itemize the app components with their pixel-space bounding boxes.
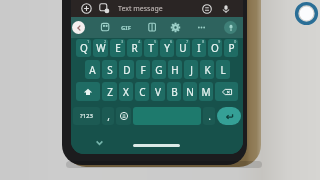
- button[interactable]: V: [151, 82, 165, 101]
- staticText: R: [131, 41, 138, 55]
- button[interactable]: M: [199, 82, 213, 101]
- staticText: ,: [107, 109, 110, 123]
- staticText: ?123: [80, 112, 93, 120]
- button[interactable]: Emoji: [202, 4, 212, 14]
- button[interactable]: I: [192, 39, 206, 57]
- button[interactable]: Q: [76, 39, 91, 57]
- staticText: S: [107, 63, 113, 77]
- staticText: C: [139, 85, 146, 99]
- staticText: A: [89, 63, 96, 77]
- button[interactable]: Y: [160, 39, 174, 57]
- button[interactable]: C: [135, 82, 149, 101]
- staticText: 2: [104, 39, 107, 44]
- staticText: K: [204, 63, 211, 77]
- button[interactable]: N: [183, 82, 197, 101]
- staticText: N: [186, 85, 194, 99]
- button[interactable]: GIF: [119, 21, 133, 35]
- staticText: E: [115, 41, 121, 55]
- button[interactable]: Shift: [76, 82, 100, 101]
- staticText: Text message: [118, 4, 163, 14]
- button[interactable]: Voice input: [224, 21, 237, 34]
- button[interactable]: D: [119, 60, 134, 79]
- staticText: Z: [107, 85, 113, 99]
- staticText: 6: [170, 39, 173, 44]
- button[interactable]: K: [200, 60, 214, 79]
- staticText: 5: [154, 39, 157, 44]
- staticText: L: [220, 63, 226, 77]
- button[interactable]: W: [93, 39, 108, 57]
- staticText: 4: [138, 39, 141, 44]
- staticText: .: [208, 109, 211, 123]
- staticText: Q: [80, 41, 88, 55]
- staticText: V: [155, 85, 161, 99]
- staticText: D: [123, 63, 131, 77]
- staticText: GIF: [121, 24, 131, 32]
- staticText: G: [155, 63, 163, 77]
- button[interactable]: X: [119, 82, 133, 101]
- staticText: O: [211, 41, 219, 55]
- staticText: Y: [164, 41, 170, 55]
- staticText: 8: [202, 39, 205, 44]
- button[interactable]: Back: [72, 21, 85, 34]
- button[interactable]: T: [144, 39, 158, 57]
- staticText: W: [96, 41, 106, 55]
- button[interactable]: O: [208, 39, 222, 57]
- staticText: 9: [218, 39, 221, 44]
- button[interactable]: Enter: [217, 107, 241, 125]
- staticText: 1: [87, 39, 90, 44]
- button[interactable]: ?123: [73, 107, 100, 125]
- staticText: F: [140, 63, 146, 77]
- button[interactable]: ,: [102, 107, 114, 125]
- button[interactable]: H: [168, 60, 182, 79]
- staticText: X: [123, 85, 129, 99]
- button[interactable]: S: [102, 60, 117, 79]
- staticText: M: [201, 85, 211, 99]
- button[interactable]: Settings: [169, 21, 182, 34]
- staticText: 3: [121, 39, 124, 44]
- staticText: 0: [234, 39, 237, 44]
- button[interactable]: Gallery: [99, 3, 110, 14]
- button[interactable]: G: [152, 60, 166, 79]
- staticText: J: [190, 63, 193, 77]
- button[interactable]: Stickers: [99, 21, 112, 34]
- button[interactable]: L: [216, 60, 230, 79]
- button[interactable]: Voice message: [221, 4, 231, 14]
- staticText: 7: [186, 39, 189, 44]
- button[interactable]: Add attachment: [81, 3, 92, 14]
- button[interactable]: P: [224, 39, 238, 57]
- button[interactable]: Hide keyboard: [94, 137, 105, 148]
- staticText: U: [179, 41, 187, 55]
- button[interactable]: A: [85, 60, 100, 79]
- button[interactable]: F: [136, 60, 150, 79]
- staticText: T: [148, 41, 154, 55]
- staticText: I: [197, 41, 201, 55]
- button[interactable]: Z: [102, 82, 117, 101]
- staticText: H: [171, 63, 179, 77]
- staticText: P: [228, 41, 235, 55]
- button[interactable]: E: [110, 39, 125, 57]
- button[interactable]: J: [184, 60, 198, 79]
- button[interactable]: .: [203, 107, 215, 125]
- button[interactable]: R: [127, 39, 142, 57]
- button[interactable]: More: [195, 21, 208, 34]
- staticText: B: [171, 85, 178, 99]
- button[interactable]: Emoji: [116, 107, 131, 125]
- button[interactable]: B: [167, 82, 181, 101]
- button[interactable]: Clipboard: [146, 21, 159, 34]
- button[interactable]: Backspace: [215, 82, 238, 101]
- button[interactable]: U: [176, 39, 190, 57]
